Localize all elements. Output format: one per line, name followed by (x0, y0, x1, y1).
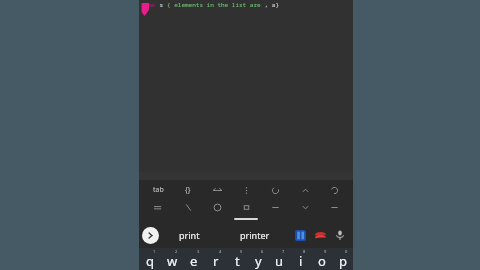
staticText: i (299, 252, 303, 270)
staticText: { elements in the list are (167, 1, 261, 9)
button[interactable]: Left (265, 199, 285, 215)
button[interactable]: 8 (290, 248, 311, 270)
staticText: {} (185, 185, 191, 195)
button[interactable]: 5 (227, 248, 248, 270)
button[interactable]: 3 (183, 248, 205, 270)
staticText: 6 (261, 249, 264, 254)
button[interactable]: 2 (161, 248, 183, 270)
staticText: 9 (324, 249, 327, 254)
staticText: 3 (197, 249, 200, 254)
staticText: print (179, 229, 200, 241)
staticText: 8 (303, 249, 306, 254)
button[interactable]: Undo (265, 182, 285, 198)
staticText: tab (153, 185, 164, 195)
staticText: s (156, 1, 167, 9)
button[interactable]: 7 (269, 248, 290, 270)
button[interactable]: tab (148, 182, 168, 198)
button[interactable]: Format (207, 199, 227, 215)
button[interactable]: Up (295, 182, 315, 198)
button[interactable]: Redo (324, 182, 344, 198)
button[interactable]: Select (236, 199, 256, 215)
button[interactable]: Right (324, 199, 344, 215)
staticText: 1 (153, 249, 156, 254)
staticText: 7 (282, 249, 285, 254)
staticText: q (146, 252, 154, 270)
staticText: , a} (261, 1, 280, 9)
button[interactable]: Down (295, 199, 315, 215)
button[interactable]: 1 (139, 248, 161, 270)
staticText: w (167, 252, 178, 270)
staticText: u (275, 252, 284, 270)
button[interactable]: 4 (205, 248, 227, 270)
button[interactable]: {} (178, 182, 198, 198)
button[interactable]: Arrows (207, 182, 227, 198)
button[interactable]: Expand toolbar (142, 227, 159, 244)
button[interactable]: printer (220, 222, 290, 248)
staticText: p (339, 252, 347, 270)
button[interactable]: 0 (332, 248, 353, 270)
staticText: 2 (175, 249, 178, 254)
button[interactable]: Indent (148, 199, 168, 215)
staticText: 0 (345, 249, 348, 254)
button[interactable]: 6 (248, 248, 269, 270)
staticText: t (235, 252, 240, 270)
staticText: 5 (240, 249, 243, 254)
staticText: o (318, 252, 326, 270)
button[interactable]: Backslash (178, 199, 198, 215)
button[interactable]: 9 (311, 248, 332, 270)
staticText: y (255, 252, 262, 270)
staticText: r (213, 252, 219, 270)
staticText: printer (240, 229, 270, 241)
button[interactable]: More (236, 182, 256, 198)
staticText: 4 (219, 249, 222, 254)
staticText: func (141, 1, 156, 9)
staticText: e (190, 252, 198, 270)
button[interactable]: Voice input (330, 225, 350, 245)
button[interactable]: Stickers (310, 225, 330, 245)
button[interactable]: print (159, 222, 220, 248)
button[interactable]: GIF (290, 225, 310, 245)
